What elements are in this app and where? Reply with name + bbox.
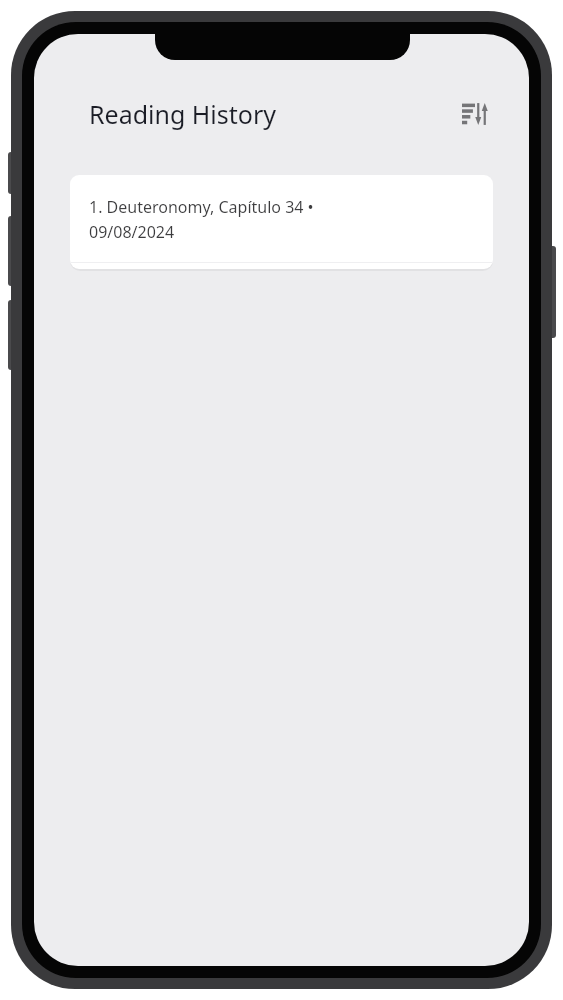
button[interactable]: Sort reading history: [455, 94, 495, 134]
staticText: 1. Deuteronomy, Capítulo 34 • 09/08/2024: [89, 196, 314, 242]
staticText: Reading History: [89, 97, 277, 131]
button[interactable]: 1. Deuteronomy, Capítulo 34 • 09/08/2024: [70, 175, 493, 269]
